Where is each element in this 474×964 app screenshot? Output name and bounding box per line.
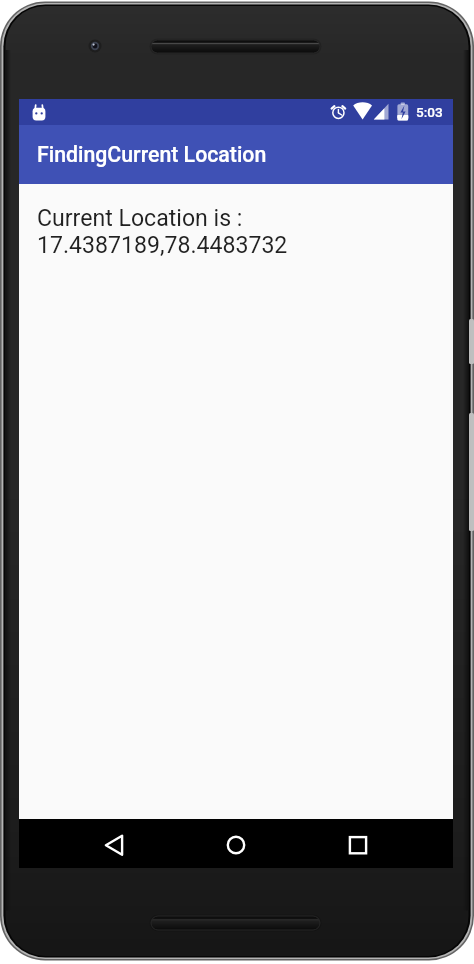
button[interactable]: Recents bbox=[334, 820, 382, 868]
staticText: 5:03 bbox=[416, 104, 443, 120]
staticText: Current Location is : bbox=[37, 205, 243, 232]
button[interactable]: Back bbox=[90, 820, 138, 868]
staticText: FindingCurrent Location bbox=[37, 142, 267, 167]
staticText: 17.4387189,78.4483732 bbox=[37, 232, 288, 259]
button[interactable]: Home bbox=[212, 820, 260, 868]
